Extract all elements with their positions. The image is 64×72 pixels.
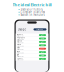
- staticText: March: [17, 40, 22, 42]
- staticText: Billed 07/31: [17, 55, 24, 57]
- button[interactable]: May: [16, 47, 48, 50]
- staticText: Switch in minutes: [20, 13, 44, 17]
- staticText: Usage: [17, 28, 26, 31]
- staticText: May: [17, 47, 20, 49]
- staticText: Billed 02/28: [17, 38, 24, 40]
- staticText: June: [17, 50, 20, 52]
- staticText: $88: [41, 44, 44, 46]
- staticText: Track your history: [20, 8, 42, 11]
- staticText: $84: [41, 34, 44, 36]
- staticText: $95: [41, 51, 44, 53]
- button[interactable]: March: [16, 40, 48, 44]
- button[interactable]: January: [16, 33, 48, 37]
- staticText: $83: [41, 58, 44, 60]
- staticText: Billed 04/30: [17, 45, 24, 47]
- button[interactable]: August: [16, 57, 48, 61]
- button[interactable]: This year: [33, 28, 46, 30]
- staticText: $79: [41, 38, 44, 39]
- staticText: Billed 06/30: [17, 52, 24, 54]
- button[interactable]: July: [16, 54, 48, 57]
- button[interactable]: April: [16, 44, 48, 47]
- staticText: February: [17, 37, 25, 38]
- staticText: January: [17, 33, 23, 35]
- staticText: July: [17, 54, 19, 55]
- staticText: $91: [41, 41, 44, 43]
- staticText: Billed 01/31: [17, 35, 24, 37]
- staticText: Compare plans fast: [20, 10, 45, 14]
- staticText: $113: [40, 48, 44, 50]
- button[interactable]: June: [16, 50, 48, 54]
- staticText: Billed 05/31: [17, 49, 24, 50]
- staticText: April: [17, 43, 20, 45]
- staticText: This year: [36, 28, 43, 30]
- staticText: Billed 08/31: [17, 59, 24, 61]
- staticText: The ideal Electric bill: [12, 2, 51, 7]
- staticText: August: [17, 57, 23, 59]
- staticText: Billed 03/31: [17, 42, 24, 44]
- button[interactable]: February: [16, 37, 48, 40]
- staticText: $88: [41, 55, 44, 56]
